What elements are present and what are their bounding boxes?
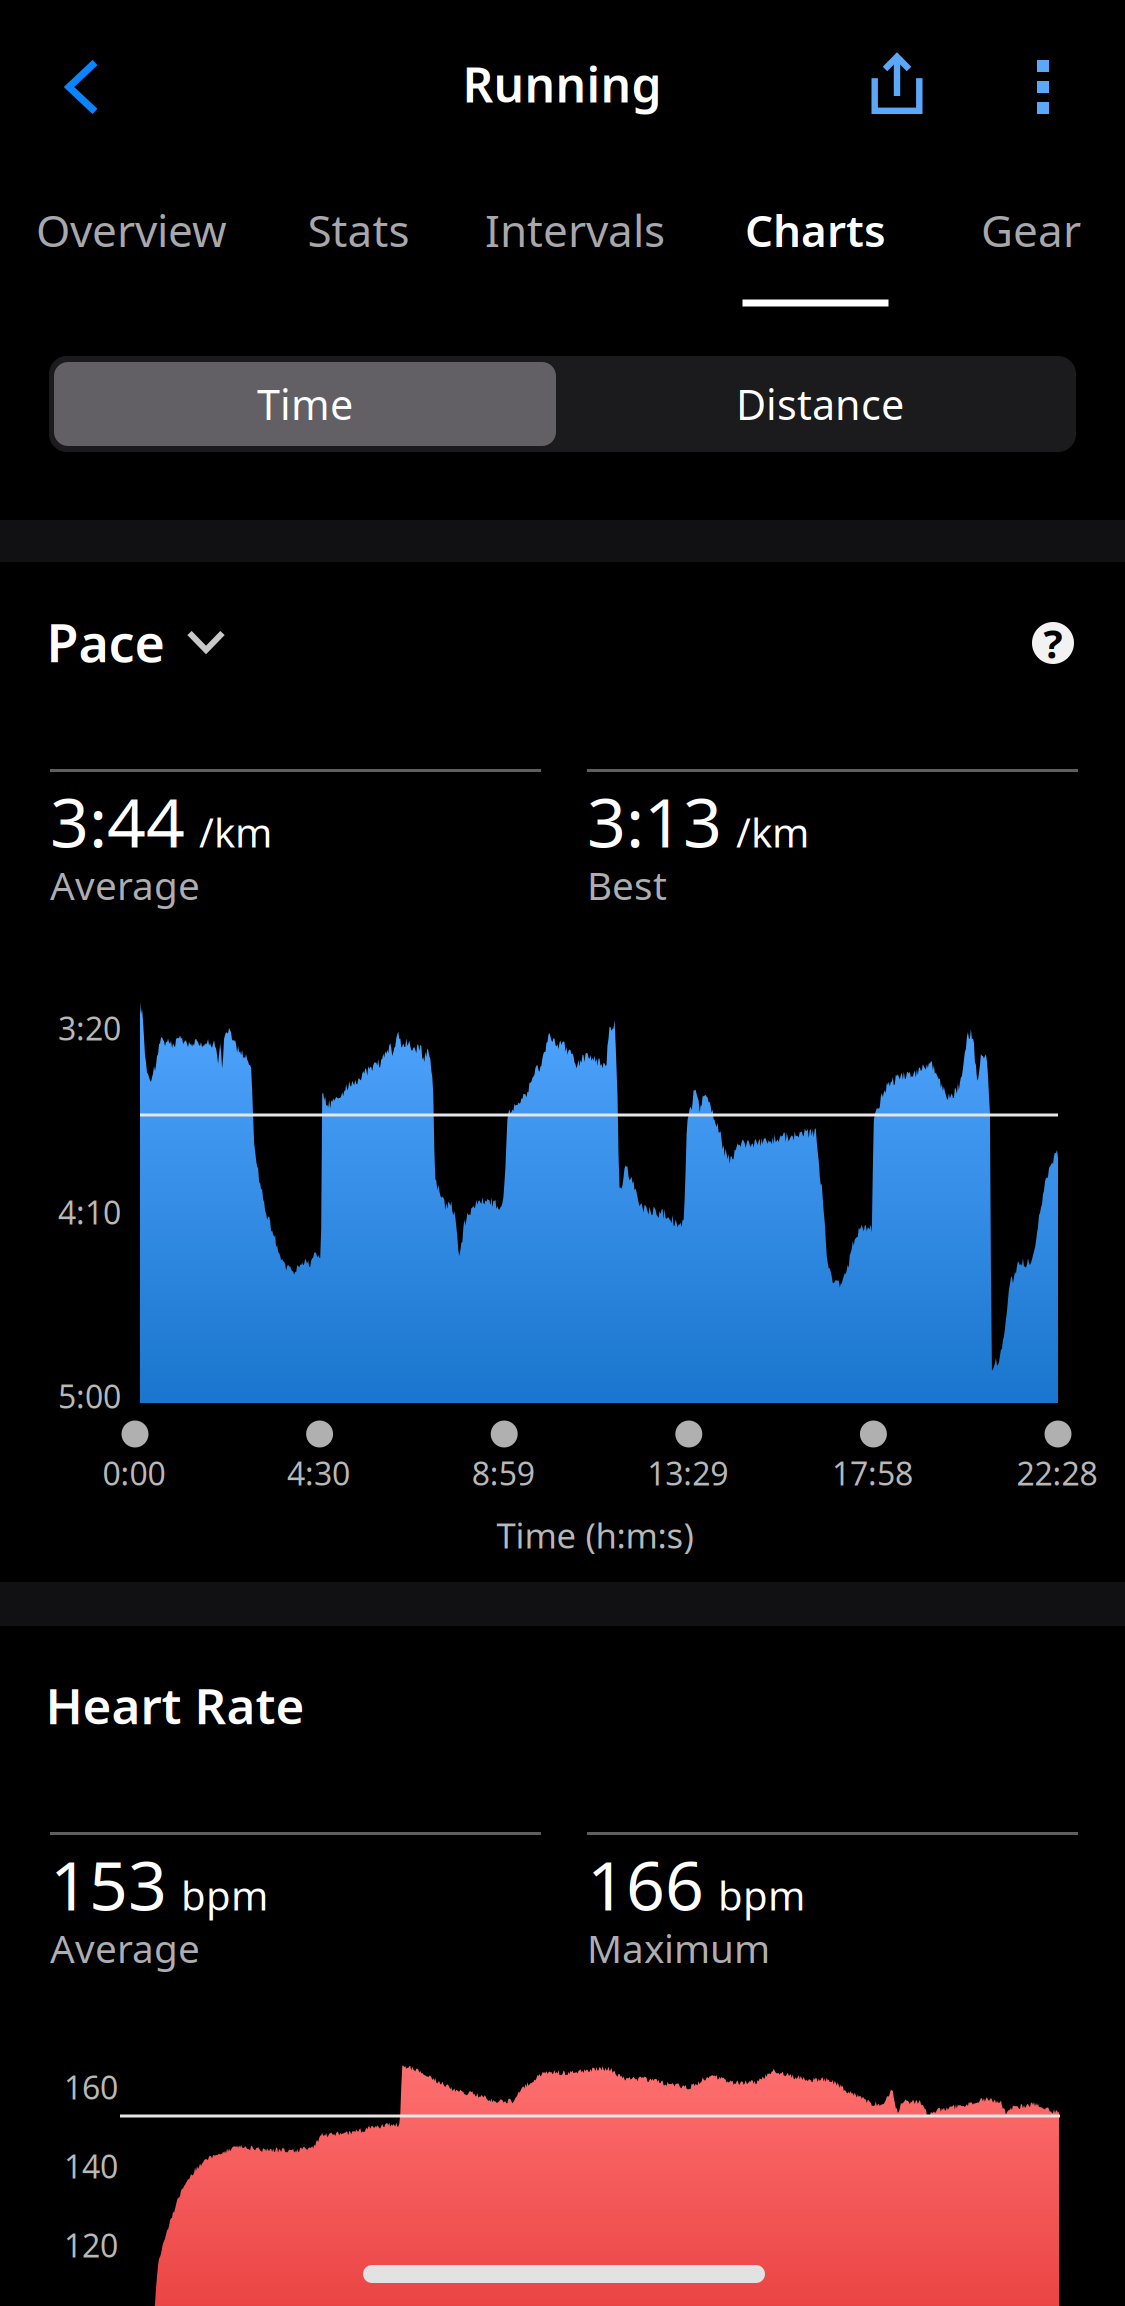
button[interactable]: Distance xyxy=(569,362,1071,446)
staticText: 153 xyxy=(50,1839,167,1929)
staticText: 140 xyxy=(64,2145,118,2187)
staticText: ? xyxy=(1043,616,1062,669)
button[interactable]: Overview xyxy=(18,185,245,315)
staticText: 160 xyxy=(64,2066,118,2108)
button[interactable]: Time xyxy=(54,362,556,446)
staticText: 166 xyxy=(587,1839,704,1929)
staticText: 8:59 xyxy=(472,1452,535,1494)
button[interactable]: Pace xyxy=(46,607,225,677)
button[interactable]: More options xyxy=(988,27,1098,147)
staticText: 0:00 xyxy=(102,1452,165,1494)
staticText: Time xyxy=(257,377,353,431)
staticText: Maximum xyxy=(587,1922,770,1974)
staticText: /km xyxy=(199,805,272,858)
staticText: Distance xyxy=(736,377,904,431)
staticText: 5:00 xyxy=(58,1375,121,1417)
button[interactable]: Charts xyxy=(705,185,926,315)
staticText: Heart Rate xyxy=(45,1672,304,1738)
button[interactable]: Back xyxy=(17,22,147,152)
staticText: bpm xyxy=(181,1868,268,1921)
staticText: 3:20 xyxy=(58,1007,121,1049)
button[interactable]: Intervals xyxy=(449,185,701,315)
staticText: 4:10 xyxy=(58,1191,121,1233)
staticText: Intervals xyxy=(485,201,665,259)
staticText: Average xyxy=(50,859,200,911)
staticText: Pace xyxy=(46,607,164,677)
staticText: 13:29 xyxy=(647,1452,728,1494)
staticText: Running xyxy=(462,52,661,116)
staticText: 4:30 xyxy=(287,1452,350,1494)
staticText: Average xyxy=(50,1922,200,1974)
staticText: 17:58 xyxy=(832,1452,913,1494)
button[interactable]: Share xyxy=(837,24,957,144)
staticText: Time (h:m:s) xyxy=(496,1512,693,1558)
staticText: 120 xyxy=(64,2224,118,2266)
staticText: Charts xyxy=(745,201,886,259)
staticText: bpm xyxy=(718,1868,805,1921)
button[interactable]: Stats xyxy=(268,185,449,315)
button[interactable]: Help xyxy=(1032,622,1074,664)
staticText: Stats xyxy=(307,201,409,259)
staticText: Gear xyxy=(981,201,1081,259)
staticText: 22:28 xyxy=(1016,1452,1097,1494)
staticText: 3:13 xyxy=(587,776,722,866)
staticText: /km xyxy=(736,805,809,858)
staticText: Best xyxy=(587,859,667,911)
button[interactable]: Gear xyxy=(944,185,1118,315)
staticText: Overview xyxy=(36,201,227,259)
staticText: 3:44 xyxy=(50,776,185,866)
